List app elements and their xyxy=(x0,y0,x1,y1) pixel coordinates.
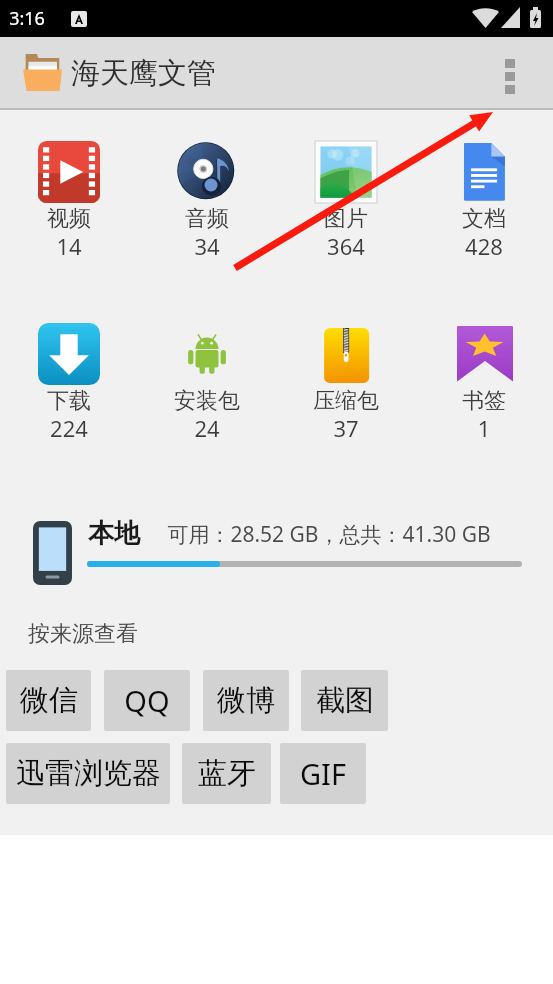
staticText: 3:16 xyxy=(9,6,45,31)
button[interactable]: 音频 xyxy=(138,131,276,265)
staticText: 安装包 xyxy=(138,387,276,415)
button[interactable]: GIF xyxy=(280,743,366,804)
button[interactable]: 视频 xyxy=(0,131,138,265)
button[interactable]: 图片 xyxy=(277,131,415,265)
staticText: 428 xyxy=(415,231,553,261)
staticText: 下载 xyxy=(0,387,138,415)
staticText: 迅雷浏览器 xyxy=(16,755,161,792)
staticText: 364 xyxy=(277,231,415,261)
staticText: 24 xyxy=(138,413,276,443)
staticText: 224 xyxy=(0,413,138,443)
staticText: 34 xyxy=(138,231,276,261)
button[interactable]: 微博 xyxy=(203,670,289,731)
staticText: 可用：28.52 GB，总共：41.30 GB xyxy=(167,520,491,549)
staticText: 音频 xyxy=(138,205,276,233)
button[interactable]: 截图 xyxy=(301,670,388,731)
staticText: 37 xyxy=(277,413,415,443)
staticText: 文档 xyxy=(415,205,553,233)
staticText: 蓝牙 xyxy=(198,755,256,792)
button[interactable]: 压缩包 xyxy=(277,313,415,447)
staticText: 按来源查看 xyxy=(28,620,138,648)
button[interactable]: 本地 xyxy=(0,505,553,590)
staticText: 书签 xyxy=(415,387,553,415)
button[interactable]: 下载 xyxy=(0,313,138,447)
staticText: 压缩包 xyxy=(277,387,415,415)
button[interactable]: 迅雷浏览器 xyxy=(6,743,170,804)
staticText: 截图 xyxy=(316,682,374,719)
button[interactable]: 文档 xyxy=(415,131,553,265)
button[interactable]: 蓝牙 xyxy=(182,743,271,804)
staticText: 微信 xyxy=(20,682,78,719)
staticText: 14 xyxy=(0,231,138,261)
staticText: 视频 xyxy=(0,205,138,233)
button[interactable]: 书签 xyxy=(415,313,553,447)
button[interactable]: 微信 xyxy=(6,670,91,731)
button[interactable]: 安装包 xyxy=(138,313,276,447)
staticText: 本地 xyxy=(88,517,140,550)
staticText: GIF xyxy=(300,754,346,793)
button[interactable]: More options xyxy=(487,50,533,96)
staticText: 海天鹰文管 xyxy=(71,55,216,92)
staticText: QQ xyxy=(124,681,170,720)
button[interactable]: QQ xyxy=(104,670,190,731)
staticText: 1 xyxy=(415,413,553,443)
staticText: 微博 xyxy=(217,682,275,719)
staticText: 图片 xyxy=(277,205,415,233)
